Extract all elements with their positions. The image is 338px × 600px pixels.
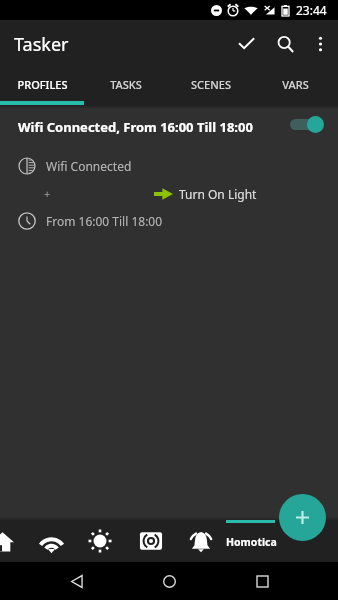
button[interactable]: Apply	[224, 20, 269, 68]
button[interactable]: VARS	[253, 68, 338, 101]
button[interactable]: TASKS	[84, 68, 168, 101]
button[interactable]: Wifi Connected	[0, 151, 338, 180]
button[interactable]: Home	[0, 520, 27, 562]
button[interactable]: Back	[56, 562, 98, 600]
button[interactable]: Wifi Connected, From 16:00 Till 18:00	[0, 108, 338, 146]
staticText: Homotica	[226, 535, 277, 549]
button[interactable]: Brightness	[75, 520, 124, 562]
staticText: SCENES	[191, 77, 231, 92]
staticText: From 16:00 Till 18:00	[46, 213, 163, 229]
staticText: TASKS	[110, 77, 142, 92]
staticText: Wifi Connected	[46, 158, 132, 174]
staticText: 23:44	[296, 2, 327, 18]
button[interactable]: Home	[148, 562, 190, 600]
button[interactable]: Recent apps	[241, 562, 283, 600]
staticText: PROFILES	[17, 77, 68, 92]
button[interactable]: Search	[269, 20, 302, 68]
button[interactable]: Profile enabled	[289, 114, 325, 134]
button[interactable]: Notifications	[176, 520, 225, 562]
button[interactable]: +	[0, 180, 338, 207]
staticText: Turn On Light	[179, 186, 257, 202]
staticText: VARS	[282, 77, 309, 92]
button[interactable]: Add profile	[279, 494, 326, 541]
button[interactable]: From 16:00 Till 18:00	[0, 207, 338, 235]
staticText: Tasker	[14, 32, 69, 57]
staticText: Wifi Connected, From 16:00 Till 18:00	[18, 118, 253, 136]
button[interactable]: Homotica	[221, 521, 281, 563]
button[interactable]: Wifi	[27, 520, 76, 562]
button[interactable]: SCENES	[168, 68, 253, 101]
staticText: +	[44, 186, 51, 201]
button[interactable]: Cast	[126, 520, 175, 562]
button[interactable]: More options	[302, 20, 338, 68]
button[interactable]: PROFILES	[0, 68, 84, 101]
